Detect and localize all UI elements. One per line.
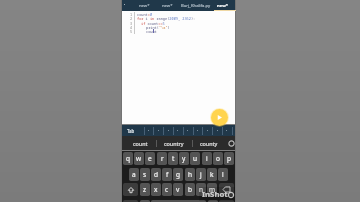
button[interactable]: q bbox=[123, 152, 133, 165]
button[interactable] bbox=[158, 137, 188, 150]
staticText: 4 bbox=[130, 25, 133, 30]
button[interactable] bbox=[134, 1, 154, 11]
button[interactable] bbox=[156, 1, 176, 11]
staticText: count bbox=[133, 140, 148, 147]
button[interactable]: t bbox=[168, 152, 178, 165]
staticText: c bbox=[165, 185, 169, 194]
button[interactable]: w bbox=[134, 152, 144, 165]
staticText: count=0 bbox=[137, 12, 153, 17]
button[interactable]: p bbox=[224, 152, 234, 165]
staticText: h bbox=[188, 170, 193, 179]
button[interactable]: r bbox=[157, 152, 167, 165]
staticText: i bbox=[206, 154, 208, 163]
staticText: v bbox=[176, 185, 180, 194]
button[interactable]: a bbox=[129, 168, 139, 181]
button[interactable]: f bbox=[162, 168, 172, 181]
staticText: InShot bbox=[202, 189, 228, 200]
button[interactable] bbox=[122, 125, 235, 137]
staticText: r bbox=[161, 154, 164, 163]
staticText: 5 bbox=[130, 29, 133, 34]
staticText: p bbox=[227, 154, 231, 163]
staticText: w bbox=[136, 154, 142, 163]
staticText: f bbox=[166, 170, 169, 179]
button[interactable]: e bbox=[145, 152, 155, 165]
button[interactable] bbox=[123, 183, 138, 196]
button[interactable]: l bbox=[218, 168, 228, 181]
staticText: country bbox=[164, 140, 184, 147]
button[interactable] bbox=[228, 140, 235, 147]
button[interactable]: o bbox=[213, 152, 223, 165]
button[interactable]: s bbox=[140, 168, 150, 181]
staticText: o bbox=[216, 154, 220, 163]
staticText: l bbox=[222, 170, 224, 179]
button[interactable]: v bbox=[173, 183, 183, 196]
button[interactable] bbox=[208, 200, 218, 202]
staticText: new* bbox=[217, 3, 228, 9]
staticText: q bbox=[126, 154, 130, 163]
staticText: x bbox=[154, 185, 158, 194]
button[interactable]: y bbox=[179, 152, 189, 165]
staticText: t bbox=[172, 154, 175, 163]
staticText: 2 bbox=[130, 16, 133, 21]
staticText: y bbox=[182, 154, 186, 163]
button[interactable]: z bbox=[140, 183, 150, 196]
staticText: 1 bbox=[130, 12, 133, 17]
staticText: u bbox=[193, 154, 198, 163]
staticText: Tab bbox=[127, 128, 135, 134]
staticText: e bbox=[148, 154, 152, 163]
staticText: county bbox=[200, 140, 218, 147]
staticText: n bbox=[199, 185, 204, 194]
button[interactable] bbox=[140, 200, 150, 202]
staticText: z bbox=[143, 185, 147, 194]
staticText: a bbox=[132, 170, 136, 179]
button[interactable]: g bbox=[173, 168, 183, 181]
staticText: s bbox=[143, 170, 147, 179]
button[interactable]: h bbox=[185, 168, 195, 181]
staticText: j bbox=[200, 170, 202, 179]
staticText: d bbox=[154, 170, 158, 179]
button[interactable] bbox=[214, 1, 235, 11]
staticText: 3 bbox=[130, 21, 133, 26]
staticText: new* bbox=[139, 3, 150, 9]
staticText: m bbox=[209, 185, 216, 194]
button[interactable]: i bbox=[202, 152, 212, 165]
staticText: g bbox=[176, 170, 180, 179]
button[interactable]: m bbox=[207, 183, 217, 196]
button[interactable]: k bbox=[207, 168, 217, 181]
button[interactable] bbox=[194, 137, 222, 150]
button[interactable]: j bbox=[196, 168, 206, 181]
button[interactable]: d bbox=[151, 168, 161, 181]
button[interactable] bbox=[123, 200, 138, 202]
staticText: Burj_Khalifa.py bbox=[181, 3, 211, 9]
staticText: count bbox=[146, 29, 157, 34]
button[interactable]: u bbox=[190, 152, 200, 165]
staticText: print("\a") bbox=[146, 25, 170, 30]
button[interactable]: b bbox=[185, 183, 195, 196]
button[interactable] bbox=[151, 200, 206, 202]
staticText: k bbox=[210, 170, 214, 179]
button[interactable] bbox=[211, 109, 228, 126]
staticText: if count==5 bbox=[141, 21, 165, 26]
button[interactable] bbox=[178, 1, 212, 11]
button[interactable]: n bbox=[196, 183, 206, 196]
button[interactable]: x bbox=[151, 183, 161, 196]
button[interactable] bbox=[127, 137, 153, 150]
staticText: new* bbox=[162, 3, 173, 9]
staticText: b bbox=[188, 185, 192, 194]
button[interactable] bbox=[219, 183, 234, 196]
button[interactable] bbox=[219, 200, 234, 202]
staticText: for i in range(2009, 2362): bbox=[137, 16, 196, 21]
button[interactable]: c bbox=[162, 183, 172, 196]
